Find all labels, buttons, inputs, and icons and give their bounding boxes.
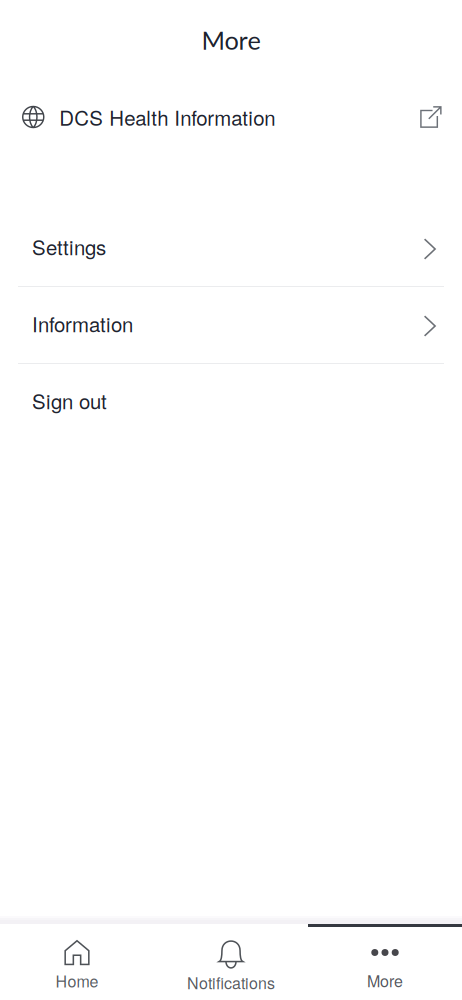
staticText: Sign out [32, 386, 107, 415]
button[interactable]: Information [0, 287, 462, 363]
button[interactable]: Sign out [0, 364, 462, 440]
staticText: DCS Health Information [59, 102, 275, 132]
button[interactable]: Home [0, 924, 154, 1000]
staticText: Home [55, 969, 98, 992]
button[interactable]: Settings [0, 210, 462, 286]
staticText: More [201, 25, 260, 55]
button[interactable]: Notifications [154, 924, 308, 1000]
staticText: Notifications [187, 971, 275, 994]
button[interactable]: DCS Health Information [0, 90, 462, 144]
staticText: Information [32, 309, 133, 338]
button[interactable]: More [308, 924, 462, 1000]
staticText: Settings [32, 232, 106, 261]
staticText: More [367, 969, 403, 992]
